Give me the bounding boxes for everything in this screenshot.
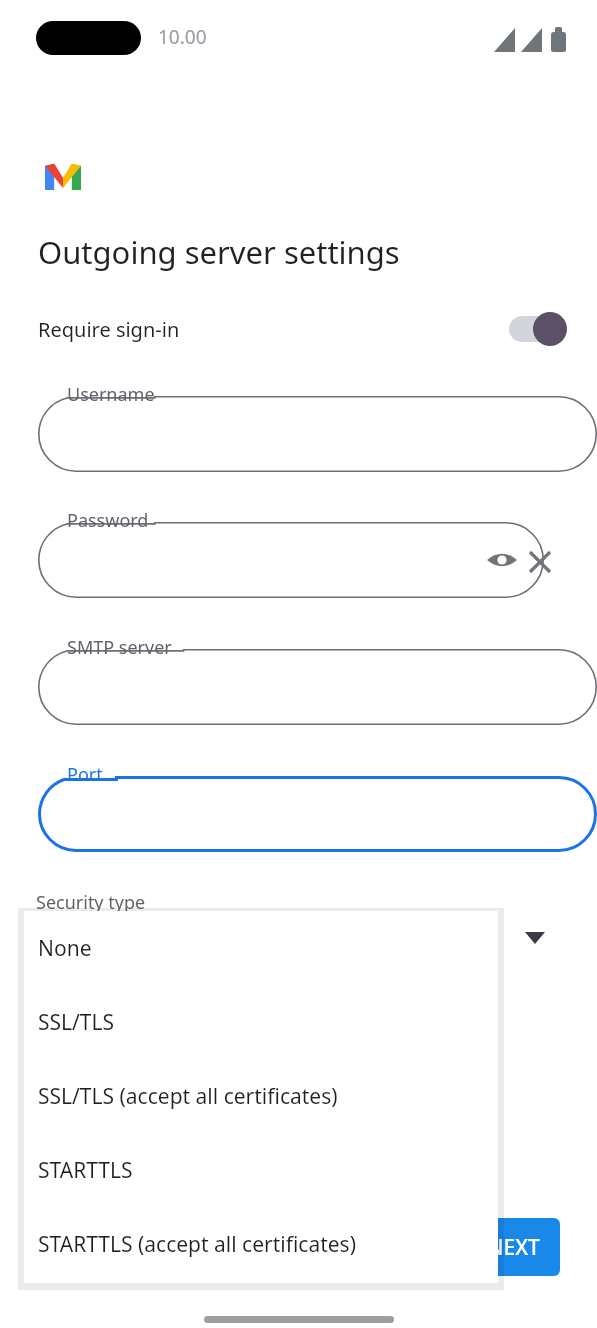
button[interactable]: Show password — [482, 540, 522, 580]
staticText: Username — [67, 382, 155, 407]
button[interactable]: Password — [38, 508, 544, 598]
button[interactable]: Require sign-in — [0, 300, 597, 358]
button[interactable]: Clear password — [519, 541, 561, 583]
staticText: 10.00 — [158, 24, 207, 50]
button[interactable]: SSL/TLS (accept all certificates) — [24, 1059, 498, 1133]
staticText: SSL/TLS (accept all certificates) — [38, 1082, 338, 1111]
button[interactable]: NEXT — [466, 1218, 560, 1276]
staticText: SSL/TLS — [38, 1008, 115, 1037]
button[interactable]: None — [24, 911, 498, 985]
button[interactable]: STARTTLS (accept all certificates) — [24, 1207, 498, 1281]
staticText: None — [38, 934, 92, 963]
staticText: SMTP server — [67, 635, 172, 660]
staticText: Security type — [36, 890, 146, 915]
staticText: STARTTLS (accept all certificates) — [38, 1230, 356, 1259]
staticText: Outgoing server settings — [38, 231, 400, 273]
button[interactable]: SMTP server — [38, 635, 597, 725]
button[interactable]: SSL/TLS — [24, 985, 498, 1059]
staticText: Require sign-in — [38, 316, 180, 343]
button[interactable]: STARTTLS — [24, 1133, 498, 1207]
staticText: Port — [67, 762, 103, 787]
staticText: Password — [67, 508, 149, 533]
button[interactable]: Port — [38, 762, 597, 852]
button[interactable]: Username — [38, 382, 597, 472]
staticText: NEXT — [487, 1233, 540, 1262]
button[interactable]: Open security type dropdown — [513, 916, 557, 960]
staticText: STARTTLS — [38, 1156, 133, 1185]
